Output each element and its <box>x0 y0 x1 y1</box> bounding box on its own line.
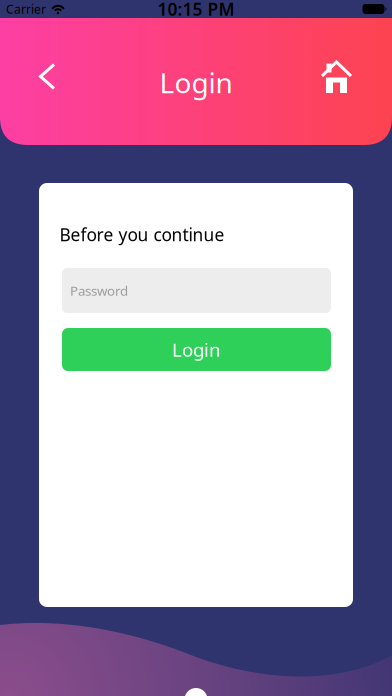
staticText: 10:15 PM <box>157 0 234 20</box>
button[interactable]: Password <box>62 268 331 313</box>
button[interactable]: Home <box>321 40 392 113</box>
staticText: Login <box>172 337 221 362</box>
staticText: Login <box>159 64 232 101</box>
button[interactable]: Login <box>62 328 331 371</box>
staticText: Before you continue <box>59 223 224 246</box>
staticText: Carrier <box>6 1 46 17</box>
button[interactable]: Back <box>0 43 56 110</box>
staticText: Password <box>70 282 128 299</box>
